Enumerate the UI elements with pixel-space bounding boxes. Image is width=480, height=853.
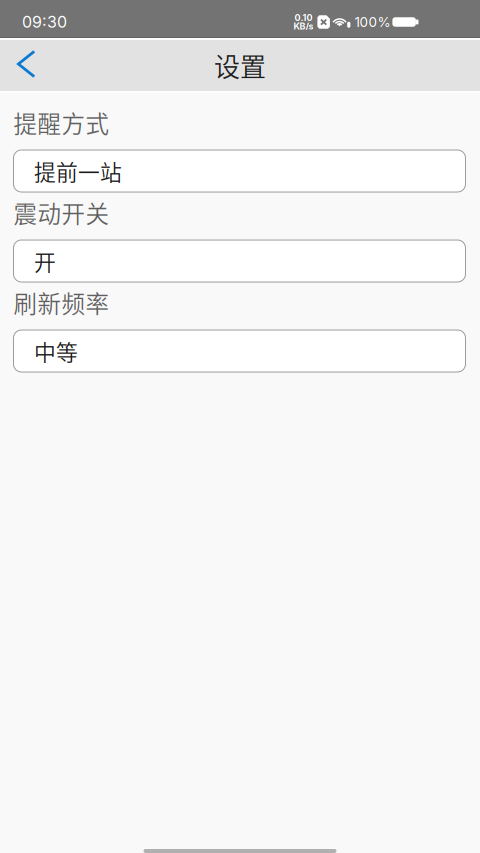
- staticText: 提前一站: [34, 155, 122, 187]
- button[interactable]: Back: [0, 40, 58, 91]
- button[interactable]: 中等: [13, 330, 465, 372]
- staticText: 0.10: [294, 12, 312, 23]
- staticText: 震动开关: [13, 195, 109, 229]
- button[interactable]: 开: [13, 240, 465, 282]
- staticText: 设置: [214, 47, 266, 84]
- staticText: 中等: [34, 335, 78, 367]
- staticText: KB/s: [293, 21, 313, 32]
- staticText: 提醒方式: [13, 105, 109, 139]
- staticText: 100%: [354, 14, 390, 30]
- button[interactable]: 提前一站: [13, 150, 465, 192]
- staticText: 开: [34, 245, 56, 277]
- staticText: 刷新频率: [13, 285, 109, 319]
- staticText: 09:30: [22, 12, 67, 32]
